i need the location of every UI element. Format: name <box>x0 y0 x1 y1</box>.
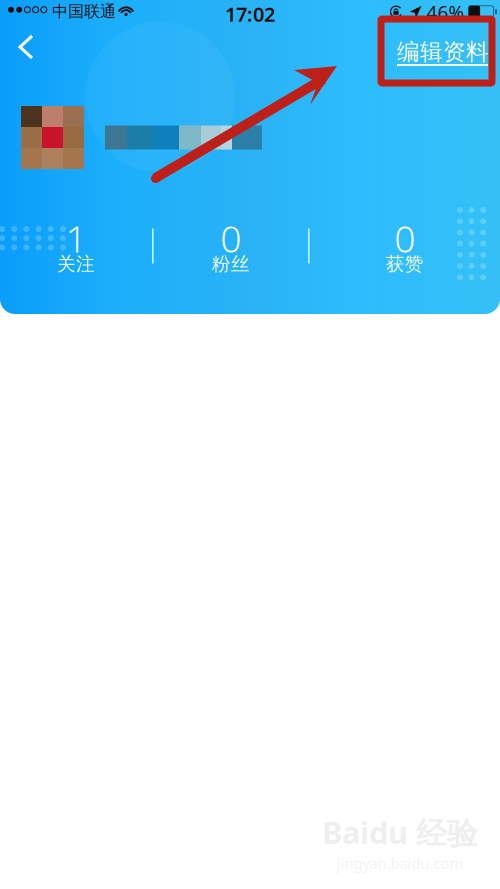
staticText: 0 <box>220 213 241 263</box>
staticText: jingyan.baidu.com <box>336 853 463 873</box>
button[interactable]: 1 <box>0 218 152 274</box>
staticText: 中国联通 <box>52 2 116 21</box>
staticText: 粉丝 <box>212 252 250 275</box>
button[interactable]: 0 <box>154 218 308 274</box>
staticText: 编辑资料 <box>397 38 489 66</box>
staticText: 1 <box>65 213 86 263</box>
button[interactable]: 0 <box>310 218 500 274</box>
staticText: 关注 <box>57 252 95 275</box>
staticText: Baidu 经验 <box>322 812 478 852</box>
button[interactable]: 编辑资料 <box>389 24 500 70</box>
button[interactable]: Back <box>0 24 52 70</box>
staticText: 0 <box>394 213 415 263</box>
staticText: 46% <box>427 0 465 24</box>
staticText: 获赞 <box>386 252 424 275</box>
staticText: 17:02 <box>225 1 275 27</box>
